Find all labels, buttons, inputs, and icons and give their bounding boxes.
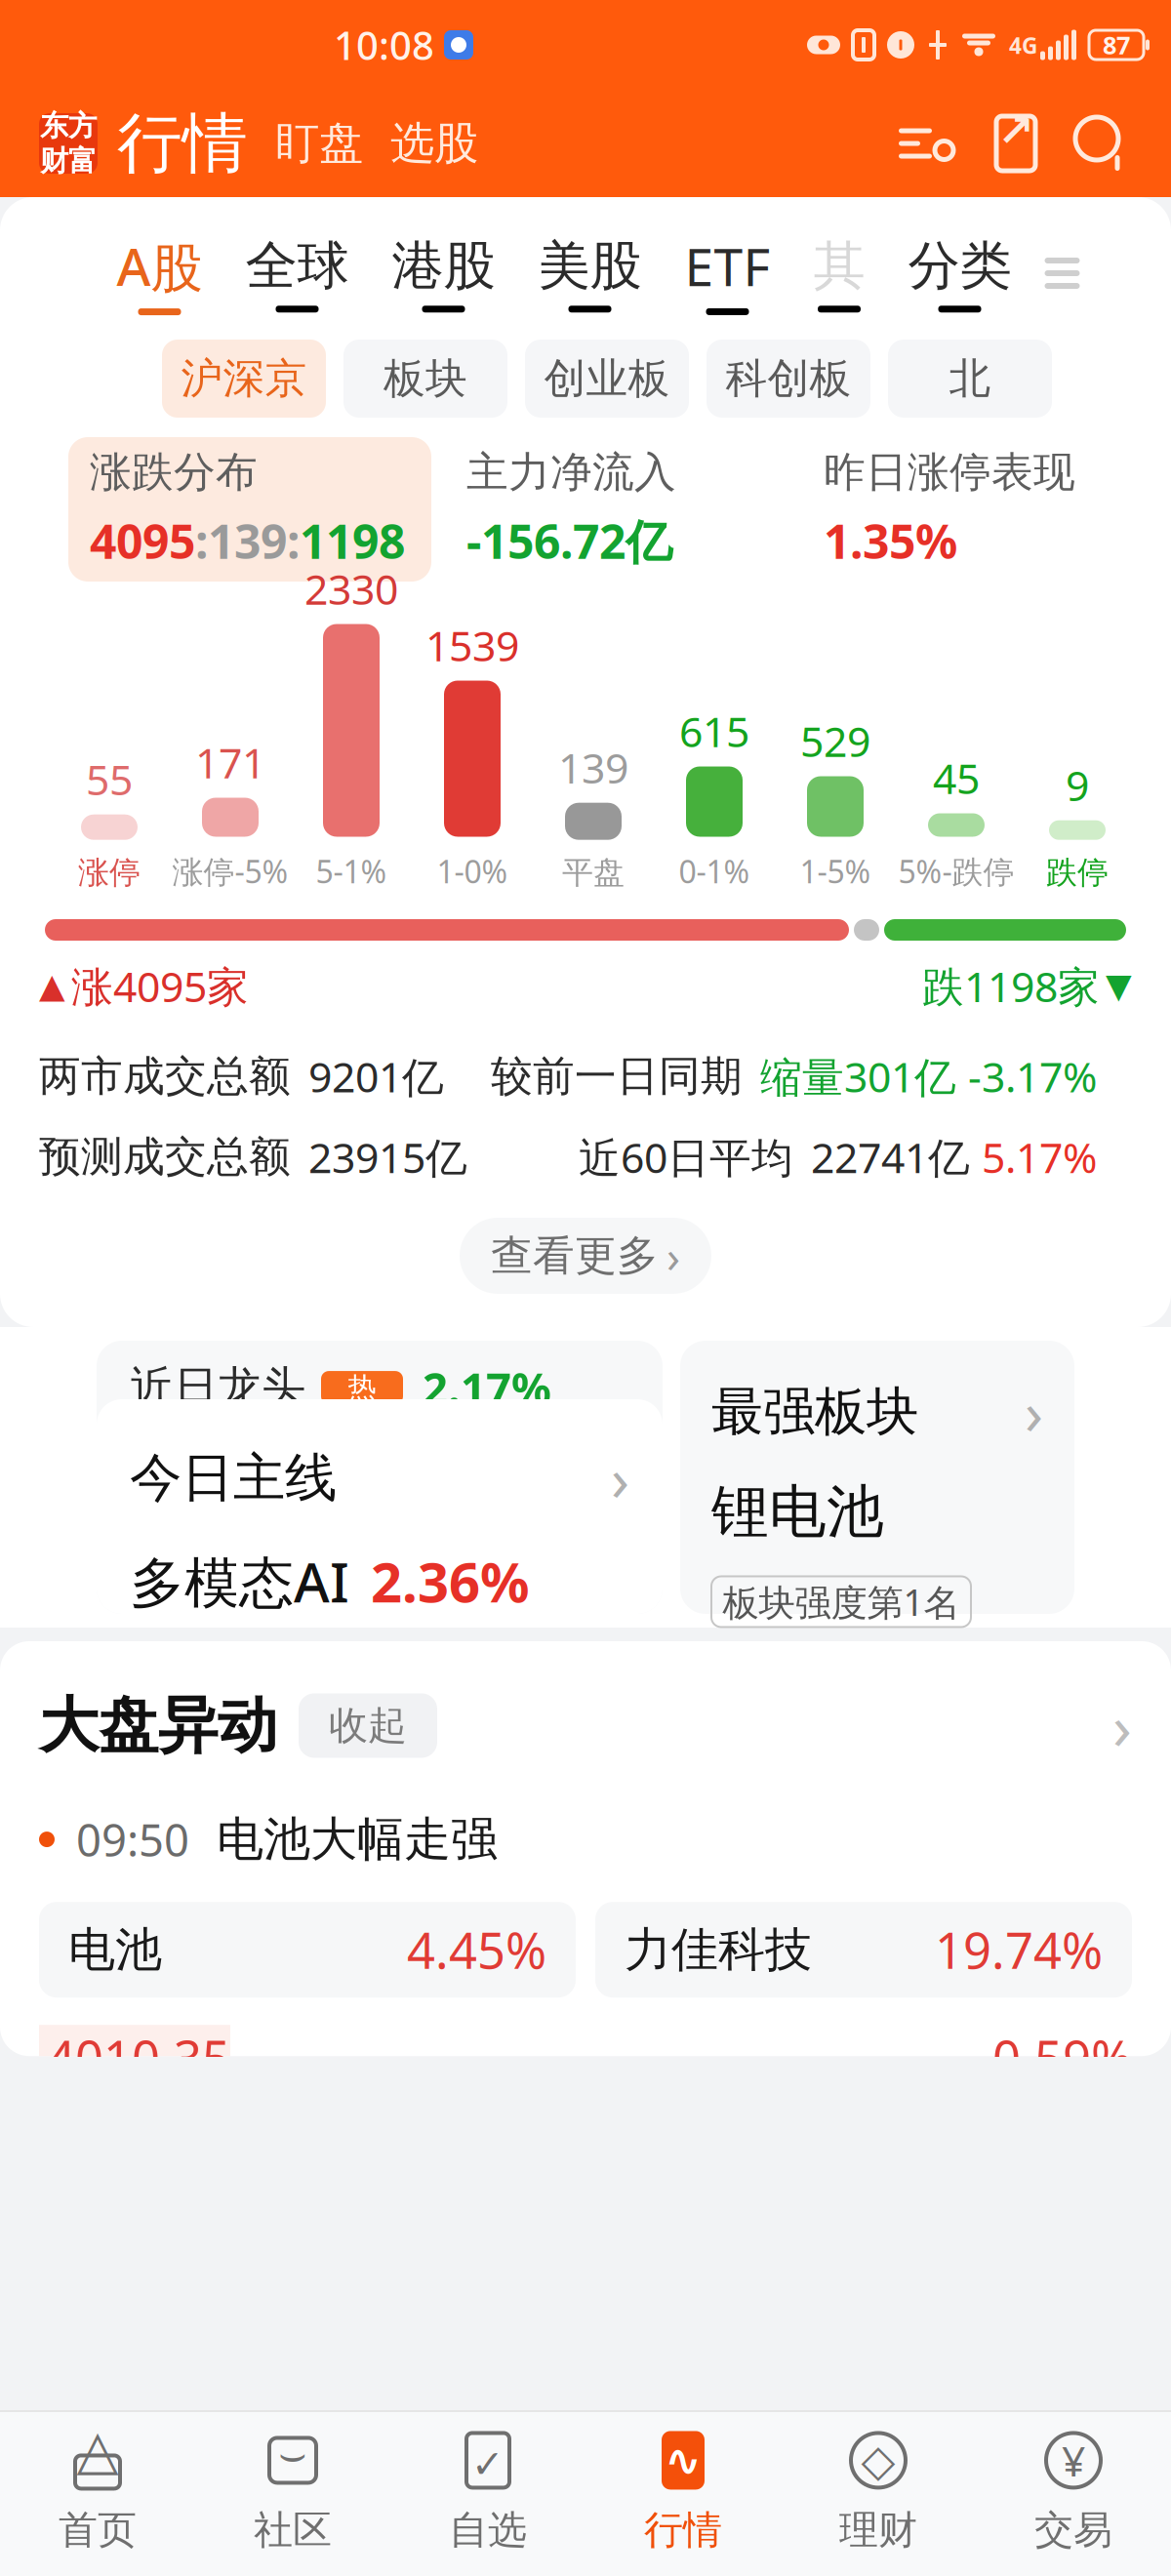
staticText: 529	[800, 713, 870, 768]
staticText: ›	[1025, 1372, 1043, 1451]
button[interactable]: 北	[888, 340, 1052, 418]
button[interactable]: 力佳科技	[595, 1902, 1132, 1998]
button[interactable]: ✓	[390, 2430, 585, 2553]
staticText: 自选	[449, 2506, 527, 2554]
staticText: 昨日涨停表现	[824, 447, 1075, 498]
button[interactable]: 昨日涨停表现	[802, 437, 1146, 582]
staticText: 科创板	[726, 353, 851, 404]
staticText: 沪深京	[181, 353, 307, 404]
button[interactable]: 查看更多	[460, 1218, 711, 1294]
button[interactable]: 更多分类	[1033, 234, 1091, 312]
button[interactable]: 设置	[894, 111, 958, 176]
button[interactable]: 大盘异动	[0, 1641, 1171, 1767]
button[interactable]: 主力净流入	[445, 437, 788, 582]
staticText: ◇	[861, 2435, 895, 2485]
staticText: 45	[933, 750, 980, 805]
button[interactable]: 电池	[39, 1902, 576, 1998]
staticText: 板块	[384, 353, 467, 404]
button[interactable]: ⌣	[195, 2430, 390, 2553]
staticText: 4.45%	[407, 1917, 546, 1983]
staticText: 其	[813, 234, 865, 298]
staticText: 创业板	[544, 353, 670, 404]
button[interactable]: 最强板块	[680, 1341, 1074, 1614]
staticText: 平盘	[562, 853, 625, 892]
staticText: -156.72亿	[466, 510, 672, 572]
staticText: 板块强度第1名	[723, 1578, 960, 1626]
button[interactable]: 全球	[224, 232, 370, 314]
button[interactable]: 创业板	[525, 340, 689, 418]
button[interactable]: ∿	[585, 2430, 781, 2553]
button[interactable]: 近日龙头	[97, 1341, 663, 1614]
staticText: ▼	[1106, 967, 1132, 1005]
staticText: 1-5%	[800, 850, 871, 892]
button[interactable]: 分享	[984, 111, 1048, 176]
staticText: 美股	[538, 234, 642, 298]
staticText: 1198	[300, 510, 405, 572]
staticText: -3.17%	[968, 1049, 1097, 1104]
button[interactable]: ◇	[781, 2430, 976, 2553]
staticText: 跌停	[1046, 853, 1109, 892]
staticText: 锂电池	[711, 1477, 884, 1547]
staticText: 全球	[245, 234, 349, 298]
staticText: 首页	[59, 2506, 137, 2554]
staticText: 盯盘	[275, 116, 363, 171]
staticText: ✓	[471, 2442, 505, 2486]
button[interactable]: A股	[95, 232, 224, 314]
staticText: 1539	[425, 617, 519, 673]
staticText: △	[77, 2419, 119, 2481]
button[interactable]: 沪深京	[162, 340, 326, 418]
button[interactable]: 其	[792, 232, 887, 314]
button[interactable]: 行情	[98, 104, 248, 183]
staticText: 2330	[304, 561, 398, 616]
staticText: 23915亿	[308, 1129, 467, 1185]
button[interactable]: 选股	[363, 116, 478, 171]
staticText: 行情	[644, 2506, 722, 2554]
button[interactable]: 涨跌分布	[68, 437, 431, 582]
button[interactable]: 分类	[887, 232, 1033, 314]
staticText: 社区	[254, 2506, 332, 2554]
staticText: 跌1198家	[922, 958, 1100, 1014]
staticText: ∿	[665, 2435, 702, 2485]
button[interactable]: ETF	[663, 232, 792, 314]
button[interactable]: 科创板	[707, 340, 870, 418]
staticText: 力佳科技	[625, 1921, 812, 1979]
staticText: 市值龙头	[293, 1731, 386, 1808]
staticText: ETF	[685, 231, 770, 300]
staticText: ⌣	[278, 2434, 307, 2477]
staticText: 电池	[68, 1921, 162, 1979]
staticText: :	[287, 510, 300, 572]
staticText: 4010.35	[47, 2025, 230, 2091]
button[interactable]: 搜索	[1070, 111, 1134, 176]
staticText: 大盘异动	[39, 1689, 277, 1762]
staticText: ↗	[997, 106, 1034, 156]
staticText: 171	[195, 735, 265, 790]
button[interactable]: 东方财富	[39, 113, 98, 174]
button[interactable]: 美股	[517, 232, 663, 314]
staticText: 近日龙头	[130, 1360, 305, 1415]
staticText: 查看更多	[491, 1230, 659, 1281]
staticText: 龙一	[333, 1663, 395, 1701]
button[interactable]: ¥	[976, 2430, 1171, 2553]
button[interactable]: △	[0, 2430, 195, 2553]
staticText: 2.17%	[423, 1358, 551, 1417]
staticText: 预测成交总额	[39, 1131, 291, 1182]
staticText: 615	[679, 703, 749, 759]
staticText: 缩量301亿	[760, 1049, 956, 1104]
staticText: 139	[558, 740, 628, 795]
staticText: 交易	[1034, 2506, 1112, 2554]
staticText: ¥	[1062, 2433, 1085, 2488]
button[interactable]: 港股	[370, 232, 517, 314]
button[interactable]: 板块	[343, 340, 507, 418]
staticText: 4095	[90, 510, 195, 572]
staticText: 涨跌分布	[90, 447, 258, 498]
staticText: 4G	[1009, 31, 1037, 60]
staticText: 路桥信息	[130, 1655, 305, 1709]
staticText: 热	[348, 1370, 376, 1405]
staticText: ›	[666, 1226, 680, 1285]
button[interactable]: 09:50	[0, 1767, 1171, 1869]
staticText: 09:50	[76, 1810, 189, 1869]
button[interactable]: 盯盘	[248, 116, 363, 171]
staticText: 两市成交总额	[39, 1051, 291, 1102]
